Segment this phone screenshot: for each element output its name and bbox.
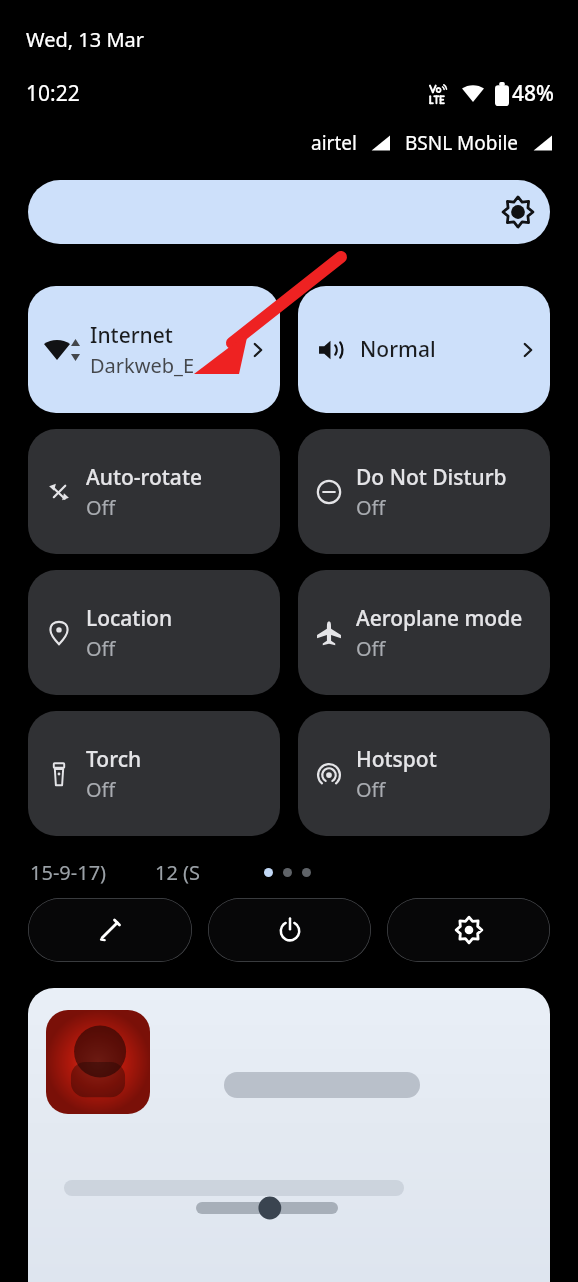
staticText: Internet xyxy=(90,321,173,350)
staticText: 12 (S xyxy=(155,859,201,886)
button[interactable]: Power xyxy=(208,898,371,962)
staticText: Off xyxy=(356,635,386,662)
staticText: Location xyxy=(86,604,173,633)
button[interactable]: Location xyxy=(28,570,280,695)
button[interactable]: Notification xyxy=(28,988,550,1282)
button[interactable]: Normal xyxy=(298,286,550,413)
button[interactable]: Do Not Disturb xyxy=(298,429,550,554)
button[interactable]: Hotspot xyxy=(298,711,550,836)
staticText: Off xyxy=(356,776,386,803)
staticText: 48% xyxy=(512,79,554,108)
button[interactable]: Auto-rotate xyxy=(28,429,280,554)
button[interactable]: Settings xyxy=(387,898,550,962)
button[interactable]: Internet xyxy=(28,286,280,413)
staticText: Darkweb_E xyxy=(90,352,195,379)
staticText: Auto-rotate xyxy=(86,463,202,492)
staticText: Off xyxy=(86,776,116,803)
button[interactable]: Aeroplane mode xyxy=(298,570,550,695)
button[interactable]: Torch xyxy=(28,711,280,836)
staticText: airtel xyxy=(311,130,357,156)
staticText: Wed, 13 Mar xyxy=(26,26,145,53)
staticText: Aeroplane mode xyxy=(356,604,523,633)
staticText: Torch xyxy=(86,745,142,774)
staticText: Normal xyxy=(360,335,518,364)
staticText: BSNL Mobile xyxy=(405,130,519,156)
staticText: Do Not Disturb xyxy=(356,463,507,492)
staticText: Off xyxy=(86,635,116,662)
button[interactable]: Brightness slider xyxy=(28,180,550,244)
staticText: Hotspot xyxy=(356,745,437,774)
staticText: 15-9-17) xyxy=(30,859,107,886)
button[interactable]: Edit tiles xyxy=(28,898,192,962)
staticText: 10:22 xyxy=(26,79,80,108)
staticText: Off xyxy=(356,494,386,521)
staticText: Off xyxy=(86,494,116,521)
